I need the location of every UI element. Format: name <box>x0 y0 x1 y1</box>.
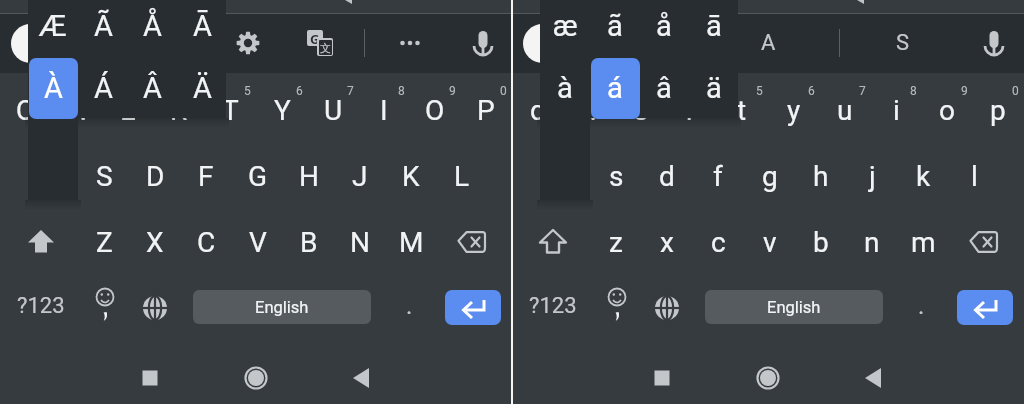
button[interactable]: 2 <box>59 68 129 114</box>
button[interactable]: T <box>195 87 265 133</box>
button[interactable]: 5 <box>724 68 794 114</box>
button[interactable]: â <box>629 65 699 111</box>
button[interactable]: A <box>18 153 88 199</box>
button[interactable]: v <box>735 219 805 265</box>
button[interactable]: Emoji <box>595 286 639 330</box>
button[interactable]: u <box>810 87 880 133</box>
button[interactable]: Home <box>234 356 278 400</box>
button[interactable]: K <box>376 153 446 199</box>
button[interactable]: b <box>786 219 856 265</box>
button[interactable]: á <box>580 65 650 111</box>
button[interactable]: 1 <box>520 68 590 114</box>
button[interactable]: G <box>223 153 293 199</box>
button[interactable]: D <box>120 153 190 199</box>
button[interactable] <box>29 58 78 119</box>
button[interactable]: S <box>69 153 139 199</box>
button[interactable]: 7 <box>315 68 385 114</box>
button[interactable]: N <box>325 219 395 265</box>
button[interactable]: U <box>298 87 368 133</box>
button[interactable]: English <box>193 290 371 324</box>
button[interactable]: 3 <box>110 68 180 114</box>
button[interactable]: ?123 <box>6 283 76 329</box>
button[interactable]: 9 <box>929 68 999 114</box>
button[interactable]: S <box>868 20 938 66</box>
button[interactable]: l <box>939 153 1009 199</box>
button[interactable]: Á <box>68 65 138 111</box>
button[interactable]: Æ <box>18 3 88 49</box>
button[interactable]: ?123 <box>518 283 588 329</box>
button[interactable]: M <box>376 219 446 265</box>
button[interactable]: 2 <box>571 68 641 114</box>
button[interactable]: Home <box>746 356 790 400</box>
button[interactable]: C <box>171 219 241 265</box>
button[interactable]: F <box>171 153 241 199</box>
button[interactable]: 3 <box>622 68 692 114</box>
button[interactable]: a <box>530 153 600 199</box>
button[interactable]: 4 <box>161 68 231 114</box>
button[interactable]: 4 <box>673 68 743 114</box>
button[interactable]: Backspace <box>450 220 494 264</box>
button[interactable]: W <box>42 87 112 133</box>
button[interactable]: Emoji <box>83 286 127 330</box>
button[interactable]: R <box>144 87 214 133</box>
button[interactable]: t <box>707 87 777 133</box>
button[interactable]: ā <box>679 3 749 49</box>
button[interactable]: m <box>888 219 958 265</box>
button[interactable]: H <box>274 153 344 199</box>
button[interactable]: J <box>325 153 395 199</box>
button[interactable]: More options <box>388 21 432 65</box>
button[interactable]: Enter <box>445 290 501 325</box>
button[interactable]: Ä <box>167 65 237 111</box>
button[interactable]: Q <box>0 87 61 133</box>
button[interactable]: Change language <box>645 286 689 330</box>
button[interactable]: p <box>963 87 1024 133</box>
button[interactable]: w <box>554 87 624 133</box>
button[interactable]: 7 <box>827 68 897 114</box>
button[interactable]: Voice input <box>461 21 505 65</box>
button[interactable]: . <box>886 283 956 329</box>
button[interactable]: n <box>837 219 907 265</box>
button[interactable]: 6 <box>264 68 334 114</box>
button[interactable]: 0 <box>980 68 1024 114</box>
button[interactable]: s <box>581 153 651 199</box>
button[interactable]: English <box>705 290 883 324</box>
button[interactable]: j <box>837 153 907 199</box>
button[interactable]: O <box>400 87 470 133</box>
button[interactable]: g <box>735 153 805 199</box>
button[interactable]: ä <box>679 65 749 111</box>
button[interactable]: r <box>656 87 726 133</box>
button[interactable]: 8 <box>878 68 948 114</box>
button[interactable]: X <box>120 219 190 265</box>
button[interactable]: Recents <box>128 356 172 400</box>
button[interactable]: h <box>786 153 856 199</box>
button[interactable]: 5 <box>212 68 282 114</box>
button[interactable]: ã <box>580 3 650 49</box>
button[interactable]: Settings <box>226 21 270 65</box>
button[interactable]: P <box>451 87 521 133</box>
button[interactable]: L <box>427 153 497 199</box>
button[interactable]: e <box>605 87 675 133</box>
button[interactable]: Backspace <box>962 220 1006 264</box>
button[interactable]: å <box>629 3 699 49</box>
button[interactable]: z <box>581 219 651 265</box>
button[interactable]: Recents <box>640 356 684 400</box>
button[interactable]: 9 <box>417 68 487 114</box>
button[interactable]: Â <box>117 65 187 111</box>
button[interactable]: Change language <box>133 286 177 330</box>
button[interactable]: Shift <box>531 220 575 264</box>
button[interactable]: k <box>888 153 958 199</box>
button[interactable]: Ā <box>167 3 237 49</box>
button[interactable]: Translate <box>298 21 342 65</box>
button[interactable]: x <box>632 219 702 265</box>
button[interactable]: d <box>632 153 702 199</box>
button[interactable]: Y <box>247 87 317 133</box>
button[interactable]: A <box>733 20 803 66</box>
button[interactable]: I <box>349 87 419 133</box>
button[interactable]: . <box>374 283 444 329</box>
button[interactable]: Enter <box>957 290 1013 325</box>
button[interactable]: Back <box>852 356 896 400</box>
button[interactable]: 0 <box>468 68 538 114</box>
button[interactable]: o <box>912 87 982 133</box>
button[interactable]: Voice input <box>972 21 1016 65</box>
button[interactable]: Back <box>340 356 384 400</box>
